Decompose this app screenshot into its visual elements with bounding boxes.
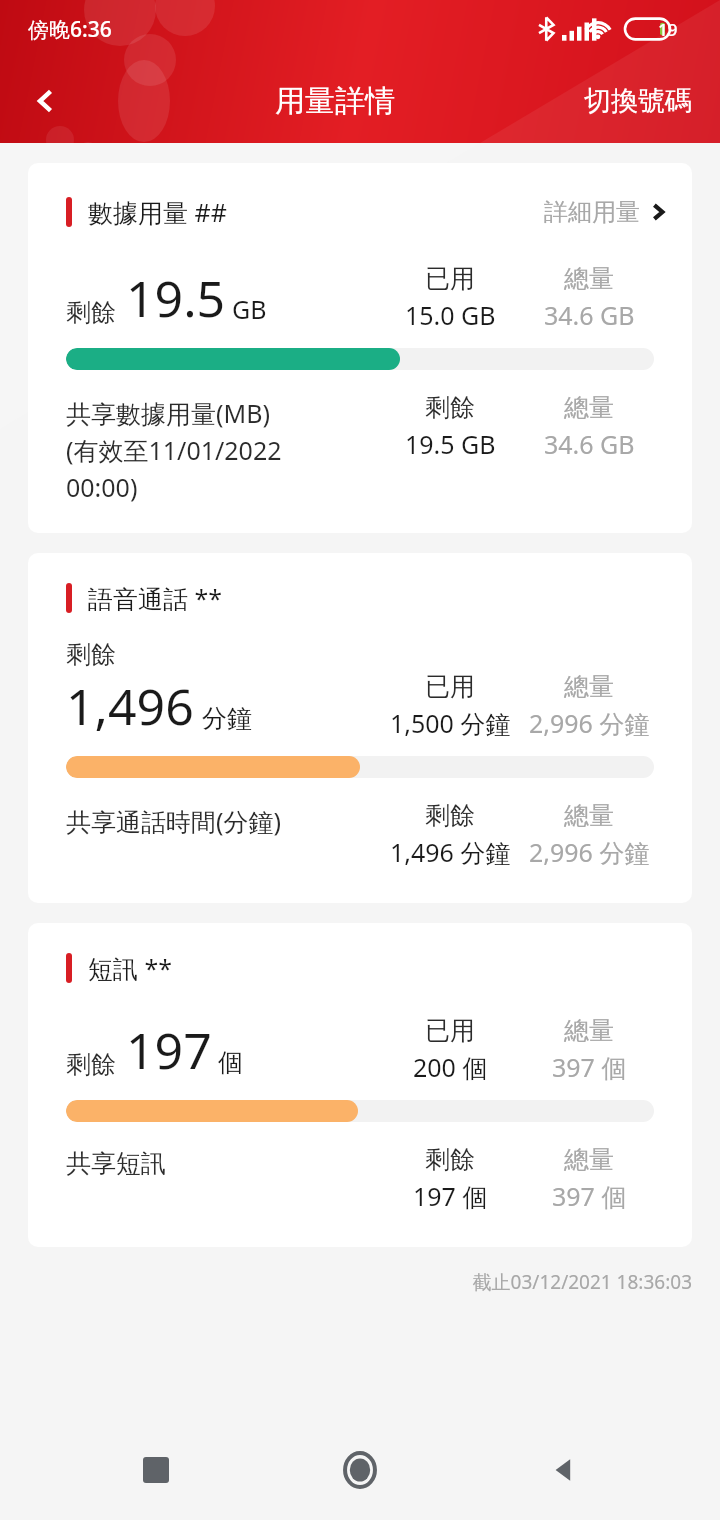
staticText: 397 個 — [552, 1179, 627, 1213]
button[interactable]: Back — [0, 58, 92, 143]
button[interactable]: 詳細用量 — [536, 191, 676, 233]
staticText: 切換號碼 — [584, 84, 692, 118]
button[interactable]: 語音通話 ** — [28, 553, 692, 903]
staticText: 2,996 分鐘 — [529, 835, 650, 869]
staticText: 200 個 — [413, 1050, 488, 1084]
staticText: 397 個 — [552, 1050, 627, 1084]
button[interactable]: Back — [516, 1422, 612, 1518]
staticText: 總量 — [564, 1015, 614, 1046]
staticText: 個 — [218, 1047, 243, 1078]
staticText: 15.0 GB — [405, 298, 496, 332]
staticText: 34.6 GB — [544, 427, 635, 461]
staticText: 剩餘 — [66, 639, 116, 670]
staticText: 1,500 分鐘 — [390, 706, 511, 740]
button[interactable]: Recents — [108, 1422, 204, 1518]
staticText: 19.5 — [126, 264, 226, 332]
staticText: 1,496 分鐘 — [390, 835, 511, 869]
staticText: 共享短訊 — [66, 1148, 384, 1179]
button[interactable]: 短訊 ** — [28, 923, 692, 1247]
staticText: 1,496 — [66, 672, 194, 740]
staticText: 共享數據用量(MB) (有效至11/01/2022 00:00) — [66, 396, 384, 505]
staticText: 已用 — [425, 671, 475, 702]
staticText: 197 個 — [413, 1179, 488, 1213]
staticText: 34.6 GB — [544, 298, 635, 332]
staticText: 短訊 ** — [88, 951, 173, 985]
staticText: 語音通話 ** — [88, 581, 223, 615]
staticText: 19 — [658, 18, 678, 41]
staticText: 總量 — [564, 671, 614, 702]
staticText: 2,996 分鐘 — [529, 706, 650, 740]
staticText: GB — [232, 292, 267, 326]
staticText: 總量 — [564, 1144, 614, 1175]
staticText: 用量詳情 — [275, 82, 395, 120]
staticText: 已用 — [425, 1015, 475, 1046]
staticText: 197 — [126, 1016, 212, 1084]
staticText: 剩餘 — [425, 392, 475, 423]
staticText: 剩餘 — [425, 800, 475, 831]
staticText: 截止03/12/2021 18:36:03 — [0, 1269, 692, 1295]
staticText: 總量 — [564, 263, 614, 294]
staticText: 總量 — [564, 392, 614, 423]
staticText: 剩餘 — [425, 1144, 475, 1175]
staticText: 19.5 GB — [405, 427, 496, 461]
staticText: 已用 — [425, 263, 475, 294]
staticText: 總量 — [564, 800, 614, 831]
button[interactable]: Home — [312, 1422, 408, 1518]
button[interactable]: 切換號碼 — [578, 78, 698, 124]
button[interactable]: 數據用量 ## — [28, 163, 692, 533]
staticText: 剩餘 — [66, 1049, 116, 1080]
staticText: 分鐘 — [202, 703, 252, 734]
staticText: 傍晚6:36 — [28, 15, 112, 44]
staticText: 剩餘 — [66, 297, 116, 328]
staticText: 共享通話時間(分鐘) — [66, 804, 384, 838]
staticText: 數據用量 ## — [88, 195, 227, 229]
staticText: 詳細用量 — [544, 197, 640, 227]
